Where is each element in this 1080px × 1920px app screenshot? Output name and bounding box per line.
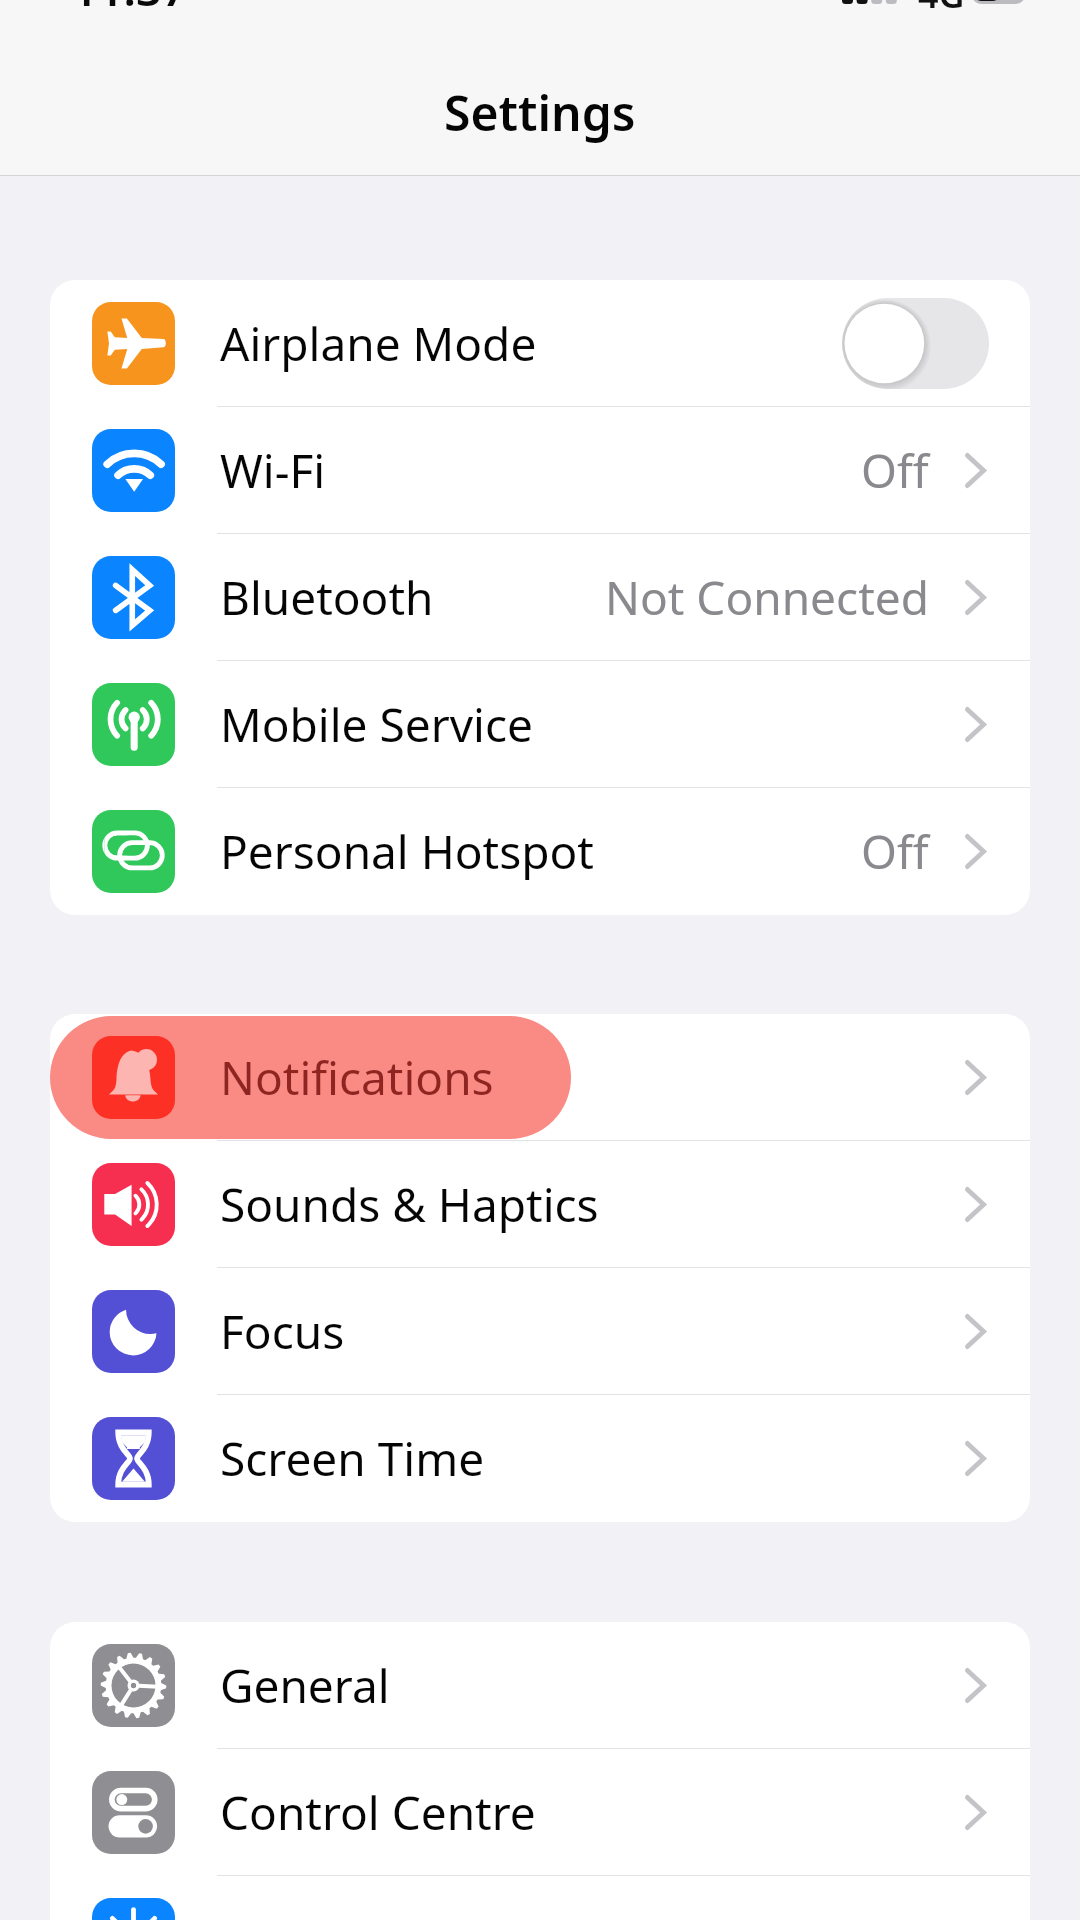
staticText: Settings (444, 80, 636, 145)
staticText: Bluetooth (220, 566, 434, 629)
button[interactable]: Airplane Mode (50, 280, 1030, 407)
staticText: Notifications (220, 1046, 494, 1109)
button[interactable]: Personal Hotspot (50, 788, 1030, 915)
button[interactable]: General (50, 1622, 1030, 1749)
button[interactable]: Airplane Mode toggle (842, 298, 989, 389)
button[interactable]: Control Centre (50, 1749, 1030, 1876)
staticText: Not Connected (605, 566, 929, 629)
staticText: Off (861, 820, 929, 883)
button[interactable]: Mobile Service (50, 661, 1030, 788)
staticText: Off (861, 439, 929, 502)
button[interactable]: Bluetooth (50, 534, 1030, 661)
staticText: 4G (918, 0, 965, 10)
staticText: Wi-Fi (220, 439, 326, 502)
button[interactable]: Screen Time (50, 1395, 1030, 1522)
staticText: Screen Time (220, 1427, 485, 1490)
button[interactable]: Sounds & Haptics (50, 1141, 1030, 1268)
button[interactable]: Display & Brightness (50, 1876, 1030, 1920)
staticText: General (220, 1654, 390, 1717)
button[interactable]: Wi-Fi (50, 407, 1030, 534)
staticText: 11:37 (72, 0, 188, 19)
staticText: Airplane Mode (220, 312, 537, 375)
staticText: Personal Hotspot (220, 820, 594, 883)
button[interactable]: Notifications (50, 1014, 1030, 1141)
button[interactable]: Focus (50, 1268, 1030, 1395)
staticText: Focus (220, 1300, 345, 1363)
staticText: Sounds & Haptics (220, 1173, 599, 1236)
staticText: Control Centre (220, 1781, 536, 1844)
staticText: Mobile Service (220, 693, 533, 756)
